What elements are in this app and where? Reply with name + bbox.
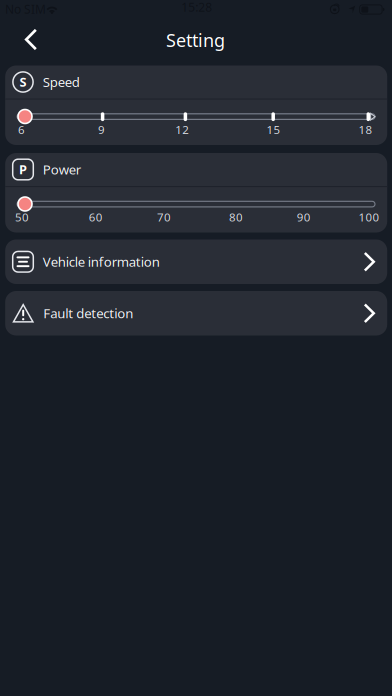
staticText: 60 [89,209,103,225]
staticText: Setting [166,28,225,52]
staticText: P [19,161,27,178]
staticText: 50 [15,209,29,225]
staticText: 70 [157,209,171,225]
staticText: 100 [358,209,379,225]
staticText: 80 [229,209,243,225]
staticText: Fault detection [43,304,133,322]
button[interactable]: Vehicle information [5,239,387,284]
staticText: 18 [358,122,372,137]
staticText: Power [43,160,81,178]
button[interactable]: Back [10,19,52,59]
staticText: 6 [18,122,25,137]
staticText: Speed [43,73,80,91]
staticText: 90 [297,209,311,225]
button[interactable]: Fault detection [5,291,387,335]
staticText: 9 [98,122,105,137]
staticText: 12 [175,122,189,137]
staticText: Vehicle information [43,253,160,271]
staticText: 15 [267,122,281,137]
staticText: No SIM [5,1,46,17]
staticText: S [19,73,26,90]
staticText: 15:28 [181,0,212,15]
